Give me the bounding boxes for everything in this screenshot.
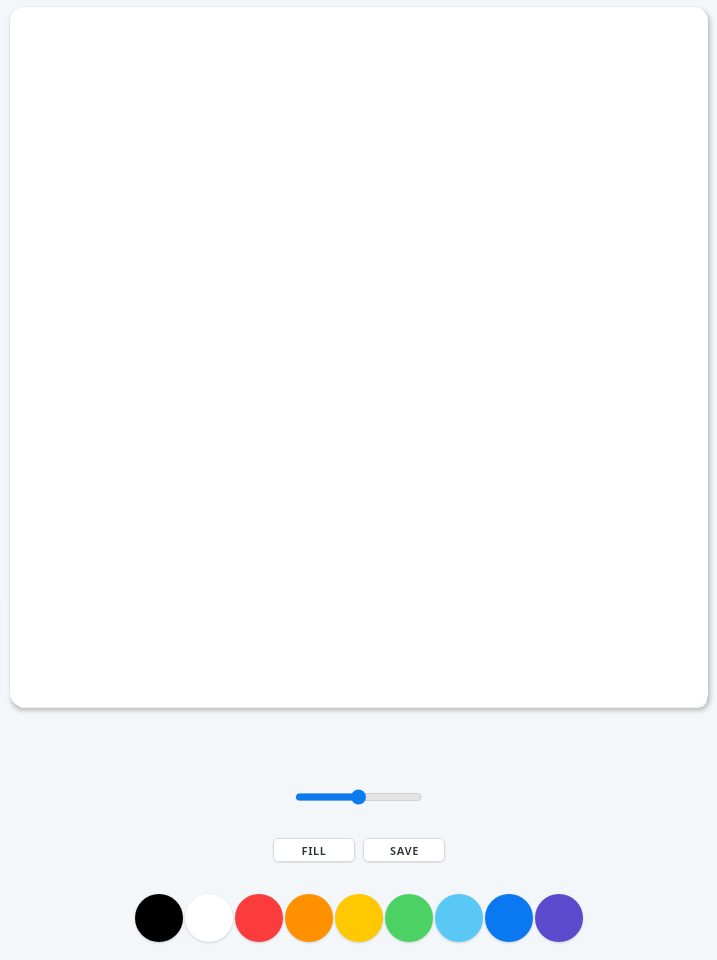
- button[interactable]: Colour swatch: [284, 893, 334, 943]
- button[interactable]: SAVE: [363, 838, 445, 862]
- button[interactable]: Colour swatch: [234, 893, 284, 943]
- staticText: FILL: [301, 843, 327, 858]
- button[interactable]: Colour swatch: [534, 893, 584, 943]
- button[interactable]: Brush size: [286, 783, 431, 811]
- button[interactable]: Colour swatch: [384, 893, 434, 943]
- button[interactable]: Colour swatch: [484, 893, 534, 943]
- button[interactable]: Colour swatch: [434, 893, 484, 943]
- button[interactable]: Colour swatch: [134, 893, 184, 943]
- button[interactable]: Colour swatch: [334, 893, 384, 943]
- staticText: SAVE: [390, 843, 419, 858]
- button[interactable]: Colour swatch: [184, 893, 234, 943]
- button[interactable]: FILL: [273, 838, 355, 862]
